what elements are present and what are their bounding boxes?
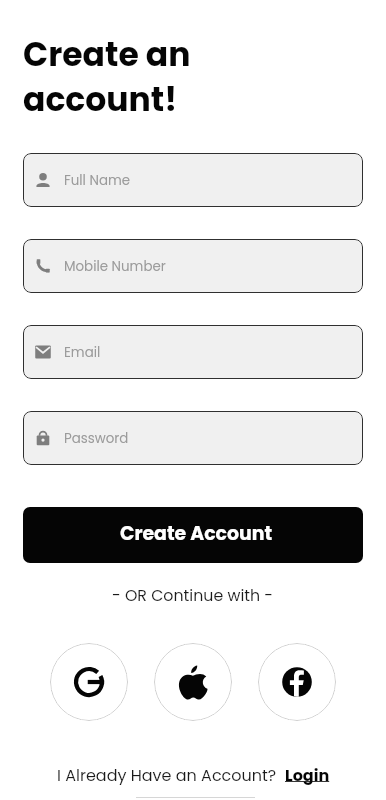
button[interactable]: Sign in with Facebook — [258, 643, 336, 721]
button[interactable]: Password — [23, 411, 363, 465]
button[interactable]: Sign in with Google — [50, 643, 128, 721]
staticText: - OR Continue with - — [112, 584, 274, 606]
button[interactable]: Full Name — [23, 153, 363, 207]
staticText: Create Account — [120, 520, 273, 546]
staticText: Login — [285, 764, 330, 786]
button[interactable]: Create Account — [23, 507, 363, 563]
staticText: Mobile Number — [64, 257, 166, 276]
staticText: Email — [64, 343, 101, 362]
staticText: Create an account! — [23, 31, 191, 122]
button[interactable]: Email — [23, 325, 363, 379]
staticText: Full Name — [64, 171, 131, 190]
staticText: I Already Have an Account? — [57, 764, 285, 786]
staticText: Password — [64, 429, 129, 448]
button[interactable]: Login — [285, 764, 330, 786]
button[interactable]: Sign in with Apple — [154, 643, 232, 721]
button[interactable]: Mobile Number — [23, 239, 363, 293]
